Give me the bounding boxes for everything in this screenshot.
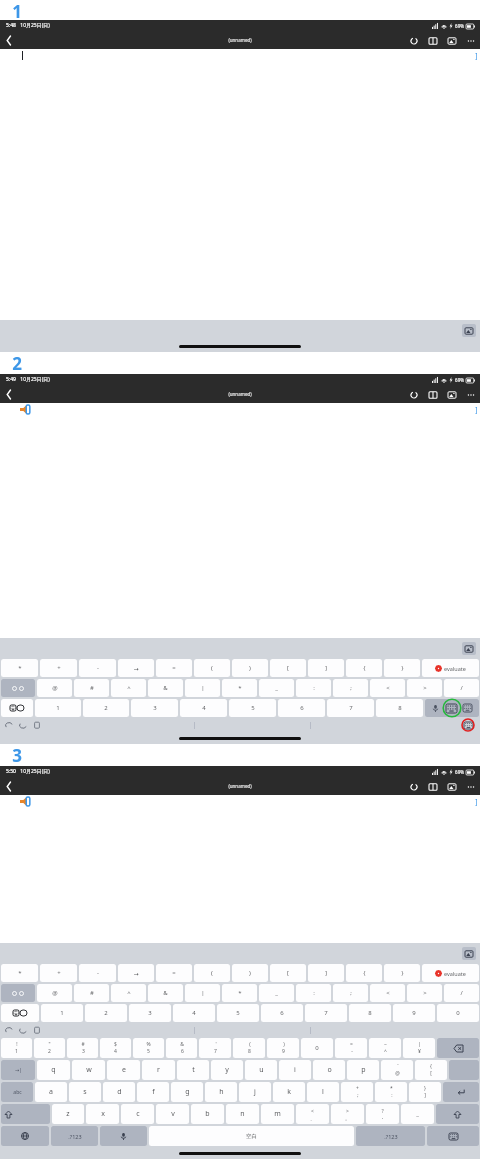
button[interactable]: Back — [0, 31, 18, 49]
button[interactable]: 空白 — [149, 1126, 354, 1146]
button[interactable]: u — [245, 1060, 277, 1080]
button[interactable]: ) — [267, 1038, 299, 1058]
button[interactable]: Hide keyboard — [427, 1126, 479, 1146]
button[interactable]: Insert image — [462, 642, 476, 655]
button[interactable]: > — [331, 1104, 364, 1124]
button[interactable]: Shift — [1, 1104, 50, 1124]
button[interactable]: @ — [37, 679, 72, 697]
button[interactable]: o — [313, 1060, 345, 1080]
button[interactable]: { — [346, 964, 382, 982]
button[interactable]: 4 — [180, 699, 227, 717]
button[interactable]: Image — [446, 35, 457, 46]
button[interactable]: 6 — [261, 1004, 303, 1022]
button[interactable]: ] — [308, 659, 344, 677]
button[interactable]: Undo — [5, 1026, 13, 1034]
button[interactable]: l — [307, 1082, 339, 1102]
button[interactable]: * — [1, 659, 38, 677]
button[interactable]: ) — [232, 964, 268, 982]
button[interactable]: 5 — [229, 699, 276, 717]
button[interactable]: * — [222, 984, 257, 1002]
button[interactable]: > — [407, 984, 442, 1002]
button[interactable]: Enter — [443, 1082, 479, 1102]
button[interactable]: _ — [259, 679, 294, 697]
button[interactable]: 8 — [376, 699, 423, 717]
button[interactable]: v — [156, 1104, 189, 1124]
button[interactable]: + — [341, 1082, 373, 1102]
button[interactable]: e — [107, 1060, 140, 1080]
button[interactable]: k — [273, 1082, 305, 1102]
button[interactable]: _ — [259, 984, 294, 1002]
button[interactable]: x — [86, 1104, 119, 1124]
button[interactable]: g — [171, 1082, 203, 1102]
button[interactable]: More options — [465, 389, 476, 400]
button[interactable]: .?123 — [51, 1126, 98, 1146]
button[interactable]: t — [177, 1060, 209, 1080]
button[interactable]: Split view — [427, 781, 438, 792]
button[interactable]: ! — [1, 1038, 32, 1058]
button[interactable]: Insert image — [462, 947, 476, 960]
button[interactable]: ~ — [369, 1038, 401, 1058]
button[interactable]: ^ — [111, 679, 146, 697]
button[interactable]: Change language — [1, 1126, 49, 1146]
button[interactable]: y — [211, 1060, 243, 1080]
button[interactable]: } — [409, 1082, 441, 1102]
button[interactable]: * — [222, 679, 257, 697]
button[interactable]: Split view — [427, 389, 438, 400]
button[interactable]: Paste — [33, 1026, 41, 1034]
button[interactable]: = — [156, 659, 192, 677]
button[interactable]: s — [69, 1082, 101, 1102]
button[interactable]: Toggle — [1, 679, 35, 697]
button[interactable]: 9 — [393, 1004, 435, 1022]
button[interactable]: j — [239, 1082, 271, 1102]
button[interactable]: Redo — [19, 721, 27, 729]
button[interactable]: { — [415, 1060, 447, 1080]
button[interactable]: i — [279, 1060, 311, 1080]
button[interactable]: Toggle — [1, 984, 35, 1002]
button[interactable]: 3 — [131, 699, 178, 717]
button[interactable]: m — [261, 1104, 294, 1124]
button[interactable]: * — [1, 964, 38, 982]
button[interactable]: Refresh — [408, 389, 419, 400]
button[interactable]: More options — [465, 781, 476, 792]
button[interactable]: Shift — [436, 1104, 479, 1124]
button[interactable]: + — [40, 659, 77, 677]
button[interactable]: Back — [0, 385, 18, 403]
button[interactable]: → — [118, 964, 154, 982]
button[interactable]: [ — [270, 964, 306, 982]
button[interactable]: # — [74, 679, 109, 697]
button[interactable]: Redo — [19, 1026, 27, 1034]
button[interactable]: f — [137, 1082, 169, 1102]
button[interactable]: 0 — [301, 1038, 333, 1058]
button[interactable]: Backspace — [437, 1038, 479, 1058]
button[interactable]: > — [407, 679, 442, 697]
button[interactable]: Split view — [427, 35, 438, 46]
button[interactable]: | — [185, 984, 220, 1002]
button[interactable]: evaluate — [422, 659, 479, 677]
button[interactable]: Image — [446, 389, 457, 400]
button[interactable]: 3 — [129, 1004, 171, 1022]
button[interactable]: = — [156, 964, 192, 982]
button[interactable]: 6 — [278, 699, 325, 717]
button[interactable]: → — [118, 659, 154, 677]
button[interactable]: < — [370, 679, 405, 697]
button[interactable]: ; — [333, 679, 368, 697]
button[interactable]: ) — [232, 659, 268, 677]
button[interactable]: ( — [233, 1038, 265, 1058]
button[interactable]: evaluate — [422, 964, 479, 982]
button[interactable]: | — [185, 679, 220, 697]
button[interactable]: More options — [465, 35, 476, 46]
button[interactable]: b — [191, 1104, 224, 1124]
button[interactable]: Paste — [33, 721, 41, 729]
button[interactable]: " — [34, 1038, 65, 1058]
button[interactable]: ` — [381, 1060, 413, 1080]
button[interactable]: d — [103, 1082, 135, 1102]
button[interactable]: 5 — [217, 1004, 259, 1022]
button[interactable]: ^ — [111, 984, 146, 1002]
button[interactable]: < — [296, 1104, 329, 1124]
button[interactable]: Refresh — [408, 781, 419, 792]
button[interactable]: ' — [199, 1038, 231, 1058]
button[interactable]: 4 — [173, 1004, 215, 1022]
button[interactable]: Insert image — [462, 324, 476, 337]
button[interactable]: h — [205, 1082, 237, 1102]
